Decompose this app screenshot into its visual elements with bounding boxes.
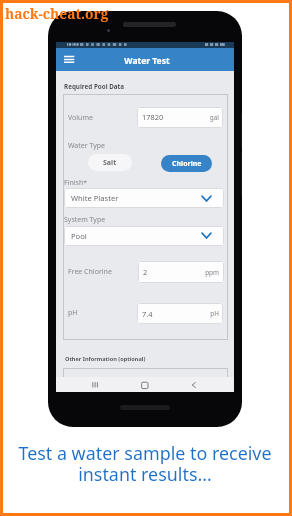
button[interactable]: White Plaster <box>64 188 224 208</box>
staticText: System Type <box>64 215 106 225</box>
button[interactable]: Back <box>183 377 205 392</box>
button[interactable]: Salt <box>88 154 132 171</box>
button[interactable]: 17820 gal <box>137 107 223 128</box>
staticText: Salt <box>103 158 117 168</box>
staticText: gal <box>183 113 219 122</box>
staticText: ppm <box>183 268 219 277</box>
staticText: Pool <box>71 231 87 241</box>
staticText: hack-cheat.org <box>5 4 109 23</box>
staticText: Test a water sample to receive instant r… <box>14 441 276 486</box>
staticText: Finish* <box>64 178 88 188</box>
staticText: Water Type <box>68 141 106 151</box>
button[interactable]: 2 ppm <box>138 261 224 283</box>
button[interactable]: Home <box>134 377 156 392</box>
staticText: Chlorine <box>172 159 202 169</box>
button[interactable]: Chlorine <box>161 155 212 172</box>
button[interactable]: Pool <box>64 226 224 246</box>
staticText: Water Test <box>58 55 236 67</box>
staticText: Other Information (optional) <box>65 355 146 363</box>
staticText: White Plaster <box>71 193 119 203</box>
staticText: pH <box>183 309 219 318</box>
button[interactable]: Recent apps <box>83 377 105 392</box>
staticText: 7.4 <box>142 309 153 319</box>
staticText: 17820 <box>142 112 164 122</box>
staticText: Volume <box>68 113 93 123</box>
staticText: Free Chlorine <box>68 267 112 277</box>
button[interactable]: 7.4 pH <box>137 303 223 324</box>
staticText: pH <box>68 308 78 318</box>
staticText: 2 <box>143 267 148 277</box>
button[interactable]: Open navigation menu <box>60 53 78 67</box>
staticText: Required Pool Data <box>64 82 125 91</box>
